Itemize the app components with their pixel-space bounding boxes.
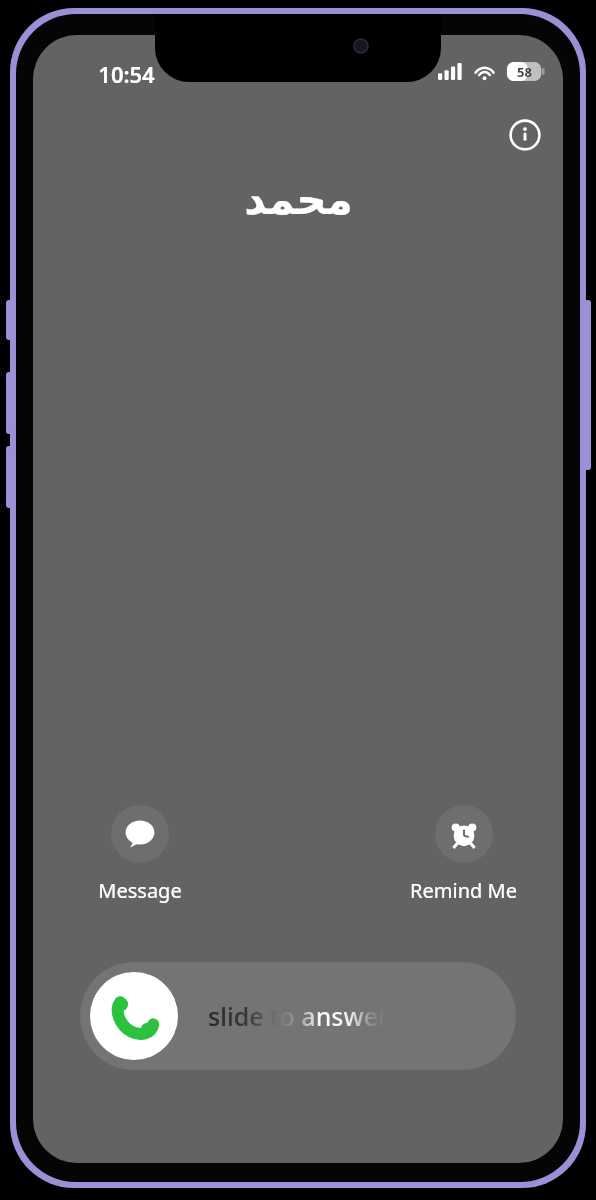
button[interactable]: Answer call (90, 972, 178, 1060)
button[interactable]: Remind Me (393, 805, 533, 910)
staticText: slide to answer (208, 999, 389, 1033)
button[interactable]: Message (80, 805, 200, 910)
button[interactable]: Call info (503, 113, 547, 157)
staticText: Remind Me (410, 877, 517, 904)
staticText: 58 (517, 63, 532, 81)
button[interactable]: slide to answer (80, 962, 516, 1070)
staticText: محمد (244, 175, 353, 224)
staticText: Message (98, 877, 182, 904)
staticText: 10:54 (98, 59, 155, 89)
